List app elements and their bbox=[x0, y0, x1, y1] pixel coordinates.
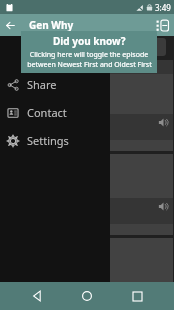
staticText: 3:49 bbox=[155, 2, 171, 13]
button[interactable]: Back bbox=[26, 284, 50, 308]
button[interactable]: Did you know? bbox=[21, 31, 157, 73]
button[interactable]: Toggle episode order bbox=[153, 16, 171, 34]
button[interactable]: Back bbox=[0, 15, 20, 35]
button[interactable]: Home bbox=[75, 284, 99, 308]
staticText: Gen Why - Generation Why bbox=[4, 117, 157, 128]
staticText: Contact bbox=[27, 105, 67, 120]
button[interactable]: Play audio bbox=[157, 200, 170, 213]
button[interactable]: Play audio bbox=[157, 116, 170, 129]
button[interactable]: Recent apps bbox=[125, 284, 149, 308]
button[interactable]: Share bbox=[0, 70, 110, 98]
staticText: Clicking here will toggle the episode or… bbox=[25, 50, 153, 60]
button[interactable]: Settings bbox=[0, 126, 110, 154]
button[interactable]: The Case - bbox=[1, 238, 173, 282]
staticText: - bbox=[4, 201, 157, 212]
button[interactable]: Contact bbox=[0, 98, 110, 126]
button[interactable]: Download bbox=[1, 224, 173, 235]
staticText: Gen Why bbox=[29, 18, 74, 32]
staticText: Settings bbox=[27, 133, 69, 148]
button[interactable]: Played bbox=[57, 62, 117, 73]
staticText: between Newest First and Oldest First bbox=[27, 60, 152, 70]
button[interactable]: - bbox=[1, 154, 173, 235]
staticText: Did you know? bbox=[53, 34, 126, 48]
staticText: Played bbox=[76, 63, 98, 73]
button[interactable]: Played bbox=[1, 60, 173, 151]
staticText: Share bbox=[27, 77, 57, 92]
button[interactable]: Download bbox=[1, 140, 173, 151]
